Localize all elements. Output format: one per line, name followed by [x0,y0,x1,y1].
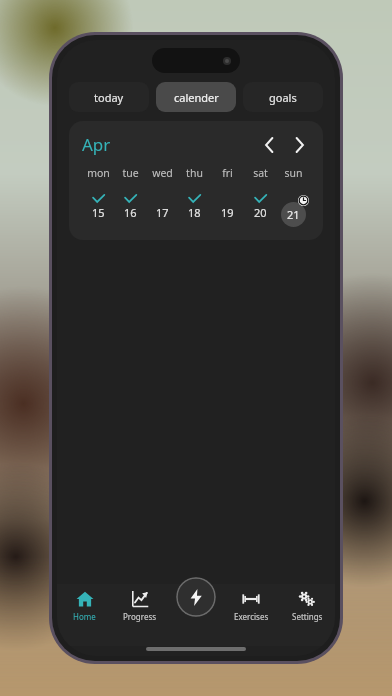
button[interactable]: 20 [244,194,277,228]
button[interactable]: Home [57,590,112,646]
button[interactable]: Previous month [258,134,280,156]
staticText: sat [253,166,268,180]
staticText: 21 [287,207,300,222]
staticText: wed [152,166,173,180]
staticText: 17 [156,205,169,220]
button[interactable]: Next month [288,134,310,156]
staticText: Settings [292,611,323,622]
staticText: Progress [123,611,157,622]
button[interactable]: Progress [112,590,167,646]
button[interactable]: 21 [277,194,310,228]
staticText: 20 [254,205,267,220]
staticText: calender [174,90,219,105]
button[interactable]: 15 [82,194,114,228]
button[interactable]: 18 [178,194,211,228]
staticText: goals [269,90,297,105]
button[interactable]: goals [243,82,323,112]
staticText: today [94,90,124,105]
button[interactable]: Start workout [176,577,216,617]
staticText: 15 [92,205,105,220]
button[interactable]: 19 [211,194,244,228]
staticText: tue [122,166,139,180]
staticText: Home [73,611,96,622]
staticText: 18 [188,205,201,220]
staticText: thu [186,166,203,180]
staticText: sun [284,166,303,180]
staticText: Apr [82,133,111,156]
staticText: 16 [124,205,137,220]
button[interactable]: Exercises [223,590,279,646]
button[interactable]: today [69,82,149,112]
staticText: mon [87,166,110,180]
staticText: 19 [221,205,234,220]
button[interactable]: 17 [146,194,178,228]
button[interactable]: 16 [114,194,146,228]
staticText: fri [222,166,233,180]
staticText: Exercises [234,611,269,622]
button[interactable]: calender [156,82,236,112]
button[interactable]: Settings [279,590,335,646]
